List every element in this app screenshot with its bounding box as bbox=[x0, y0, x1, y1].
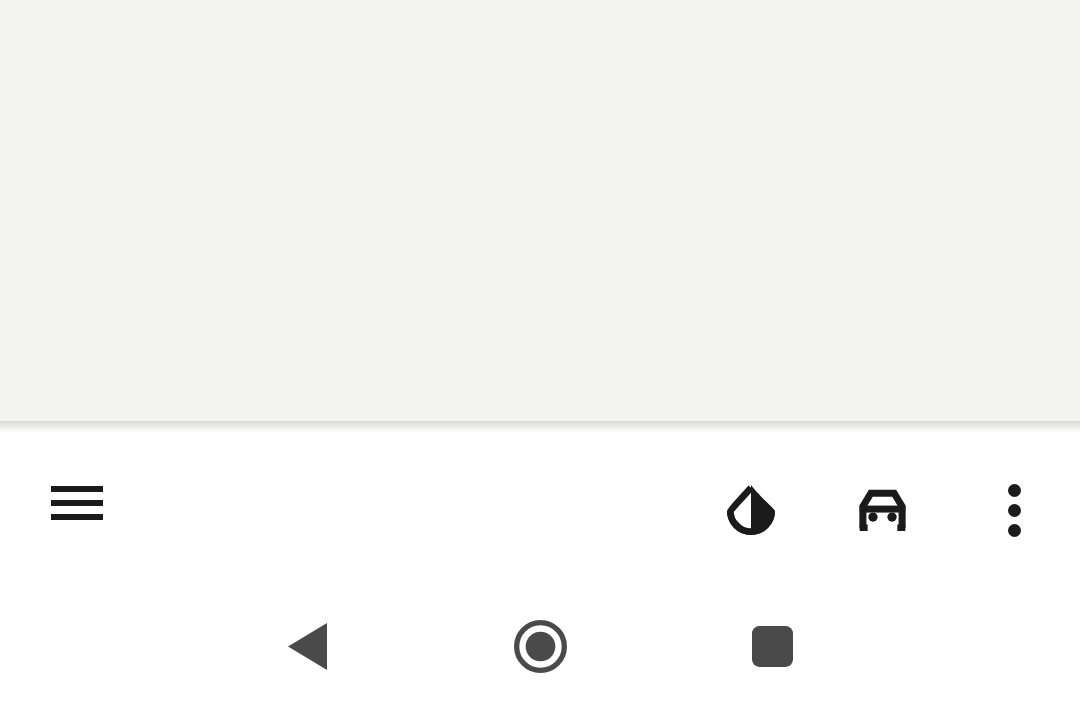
button[interactable]: Home bbox=[495, 600, 585, 692]
button[interactable]: Menu bbox=[36, 480, 118, 526]
button[interactable]: Back bbox=[262, 600, 352, 692]
button[interactable]: Invert colors bbox=[712, 474, 790, 546]
button[interactable]: Recents bbox=[727, 600, 817, 692]
button[interactable]: Driving mode bbox=[844, 477, 920, 543]
button[interactable]: More options bbox=[980, 474, 1048, 546]
